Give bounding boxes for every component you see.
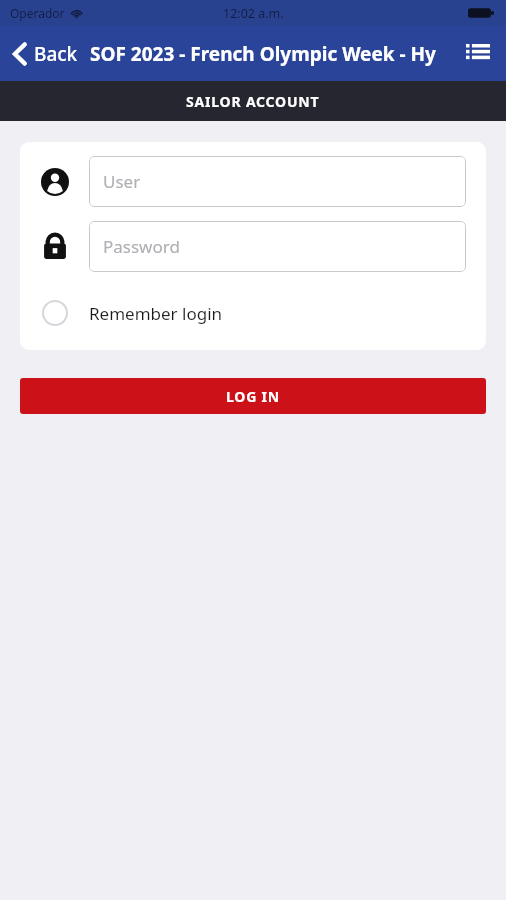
button[interactable]: LOG IN (20, 378, 486, 414)
button[interactable]: User (89, 156, 466, 207)
staticText: SAILOR ACCOUNT (186, 92, 320, 111)
button[interactable]: Remember login (20, 300, 486, 350)
button[interactable]: Password (89, 221, 466, 272)
staticText: User (103, 170, 141, 193)
button[interactable]: Back (8, 35, 82, 73)
staticText: SOF 2023 - French Olympic Week - Hy (90, 41, 454, 67)
staticText: Password (103, 235, 180, 258)
button[interactable]: Menu (458, 36, 498, 72)
staticText: Operador (10, 5, 65, 21)
staticText: LOG IN (226, 387, 281, 406)
staticText: 12:02 a.m. (223, 5, 284, 22)
staticText: Remember login (89, 302, 223, 325)
staticText: Back (34, 41, 78, 67)
